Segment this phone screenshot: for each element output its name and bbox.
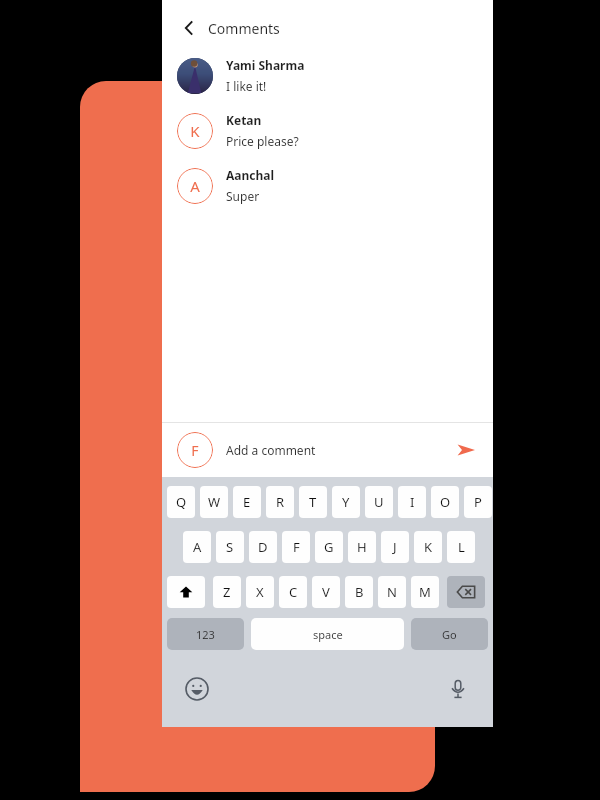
button[interactable]: H — [348, 531, 376, 563]
staticText: 123 — [196, 627, 215, 642]
button[interactable]: L — [447, 531, 475, 563]
staticText: Y — [342, 493, 350, 511]
button[interactable]: space — [251, 618, 404, 650]
staticText: X — [256, 583, 264, 601]
button[interactable]: 123 — [167, 618, 244, 650]
staticText: F — [191, 441, 199, 460]
button[interactable]: A — [183, 531, 211, 563]
staticText: Yami Sharma — [226, 57, 305, 73]
button[interactable]: A — [162, 158, 493, 213]
staticText: Aanchal — [226, 167, 275, 183]
staticText: F — [293, 538, 300, 556]
staticText: D — [258, 538, 268, 556]
button[interactable]: F — [162, 423, 493, 477]
button[interactable]: Yami Sharma — [162, 48, 493, 103]
staticText: M — [419, 583, 431, 601]
button[interactable]: V — [312, 576, 340, 608]
staticText: Z — [223, 583, 231, 601]
staticText: A — [193, 538, 202, 556]
staticText: N — [387, 583, 397, 601]
staticText: I like it! — [226, 78, 267, 94]
staticText: A — [190, 176, 200, 196]
staticText: Super — [226, 188, 260, 204]
button[interactable]: J — [381, 531, 409, 563]
button[interactable]: Q — [167, 486, 195, 518]
staticText: Add a comment — [226, 442, 316, 458]
button[interactable]: E — [233, 486, 261, 518]
button[interactable]: W — [200, 486, 228, 518]
button[interactable]: Emoji — [182, 674, 212, 704]
staticText: V — [322, 583, 330, 601]
staticText: K — [424, 538, 433, 556]
button[interactable]: Shift — [167, 576, 205, 608]
button[interactable]: Send — [453, 437, 479, 463]
staticText: L — [458, 538, 465, 556]
staticText: Ketan — [226, 112, 262, 128]
button[interactable]: O — [431, 486, 459, 518]
button[interactable]: P — [464, 486, 492, 518]
button[interactable]: F — [282, 531, 310, 563]
staticText: B — [355, 583, 364, 601]
staticText: K — [190, 121, 200, 141]
button[interactable]: M — [411, 576, 439, 608]
staticText: E — [243, 493, 251, 511]
button[interactable]: B — [345, 576, 373, 608]
button[interactable]: K — [414, 531, 442, 563]
button[interactable]: R — [266, 486, 294, 518]
button[interactable]: Y — [332, 486, 360, 518]
button[interactable]: Voice input — [443, 674, 473, 704]
staticText: C — [289, 583, 298, 601]
button[interactable]: K — [162, 103, 493, 158]
staticText: R — [276, 493, 285, 511]
staticText: H — [357, 538, 367, 556]
button[interactable]: Backspace — [447, 576, 485, 608]
staticText: T — [309, 493, 317, 511]
staticText: O — [440, 493, 451, 511]
button[interactable]: Go — [411, 618, 488, 650]
staticText: space — [313, 627, 343, 642]
staticText: Q — [176, 493, 187, 511]
button[interactable]: D — [249, 531, 277, 563]
button[interactable]: C — [279, 576, 307, 608]
button[interactable]: N — [378, 576, 406, 608]
staticText: Go — [442, 627, 457, 642]
button[interactable]: X — [246, 576, 274, 608]
staticText: J — [393, 538, 397, 556]
staticText: W — [208, 493, 221, 511]
staticText: P — [474, 493, 482, 511]
staticText: Comments — [208, 19, 280, 38]
button[interactable]: U — [365, 486, 393, 518]
staticText: U — [374, 493, 384, 511]
staticText: Price please? — [226, 133, 299, 149]
button[interactable]: Z — [213, 576, 241, 608]
staticText: G — [324, 538, 334, 556]
button[interactable]: Back — [176, 15, 202, 41]
button[interactable]: G — [315, 531, 343, 563]
button[interactable]: I — [398, 486, 426, 518]
staticText: S — [226, 538, 234, 556]
button[interactable]: S — [216, 531, 244, 563]
staticText: I — [410, 493, 415, 511]
button[interactable]: T — [299, 486, 327, 518]
